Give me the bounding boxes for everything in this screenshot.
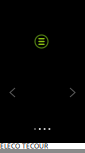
button[interactable]: Previous (10, 88, 15, 97)
staticText: ELECO TECOUR (0, 142, 48, 150)
button[interactable]: Next (70, 88, 75, 97)
